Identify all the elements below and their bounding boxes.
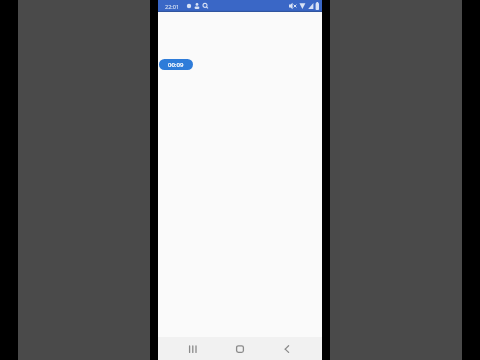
staticText: 00:09 [168,61,184,69]
button[interactable] [170,337,216,360]
staticText: 22:01 [165,3,180,10]
button[interactable] [263,337,310,360]
button[interactable]: 00:09 [159,59,193,70]
button[interactable] [216,337,263,360]
